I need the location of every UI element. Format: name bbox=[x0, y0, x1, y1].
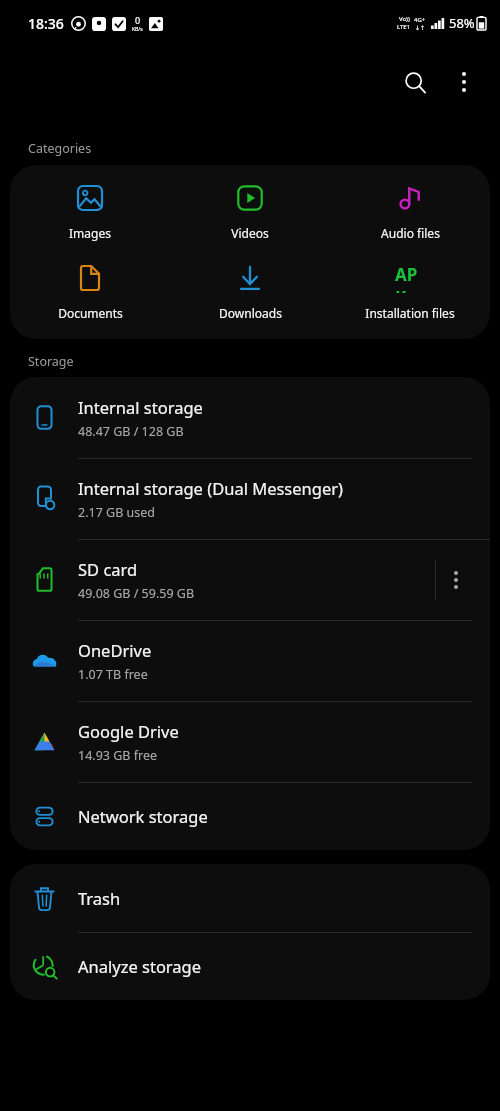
button[interactable]: SD card options bbox=[436, 560, 476, 600]
button[interactable]: SD card bbox=[10, 539, 490, 620]
staticText: 18:36 bbox=[28, 14, 64, 33]
staticText: 14.93 GB free bbox=[78, 747, 157, 764]
staticText: APK bbox=[395, 263, 425, 293]
staticText: 58% bbox=[449, 14, 475, 32]
button[interactable]: OneDrive bbox=[10, 620, 490, 701]
staticText: 1.07 TB free bbox=[78, 666, 148, 683]
button[interactable]: Internal storage (Dual Messenger) bbox=[10, 458, 490, 539]
staticText: 49.08 GB / 59.59 GB bbox=[78, 585, 195, 602]
staticText: Installation files bbox=[365, 305, 455, 321]
button[interactable]: Google Drive bbox=[10, 701, 490, 782]
staticText: 48.47 GB / 128 GB bbox=[78, 423, 184, 440]
staticText: Internal storage bbox=[78, 396, 203, 418]
button[interactable]: Images bbox=[10, 179, 170, 245]
staticText: Downloads bbox=[219, 305, 282, 321]
staticText: LTE1 bbox=[397, 23, 411, 31]
staticText: SD card bbox=[78, 558, 138, 580]
staticText: OneDrive bbox=[78, 639, 152, 661]
button[interactable]: APK bbox=[330, 259, 490, 325]
staticText: ↓↑ bbox=[415, 24, 426, 31]
button[interactable]: Audio files bbox=[330, 179, 490, 245]
staticText: Videos bbox=[231, 225, 269, 241]
staticText: Vo)) bbox=[399, 15, 410, 23]
staticText: 4G+ bbox=[414, 16, 426, 24]
button[interactable]: Search bbox=[391, 58, 439, 106]
button[interactable]: Analyze storage bbox=[10, 932, 490, 1000]
staticText: KB/s bbox=[132, 26, 143, 33]
staticText: Analyze storage bbox=[78, 955, 202, 977]
staticText: Documents bbox=[58, 305, 123, 321]
button[interactable]: Trash bbox=[10, 864, 490, 932]
button[interactable]: More options bbox=[440, 58, 488, 106]
staticText: Google Drive bbox=[78, 720, 179, 742]
button[interactable]: Videos bbox=[170, 179, 330, 245]
staticText: Categories bbox=[28, 140, 92, 157]
staticText: Storage bbox=[28, 353, 74, 370]
staticText: 2.17 GB used bbox=[78, 504, 155, 521]
button[interactable]: Internal storage bbox=[10, 377, 490, 458]
staticText: 0 bbox=[135, 14, 141, 26]
button[interactable]: Network storage bbox=[10, 782, 490, 850]
staticText: Trash bbox=[78, 887, 121, 909]
button[interactable]: Downloads bbox=[170, 259, 330, 325]
staticText: Images bbox=[69, 225, 111, 241]
staticText: Internal storage (Dual Messenger) bbox=[78, 477, 343, 499]
staticText: Network storage bbox=[78, 805, 208, 827]
button[interactable]: Documents bbox=[10, 259, 170, 325]
staticText: Audio files bbox=[381, 225, 440, 241]
